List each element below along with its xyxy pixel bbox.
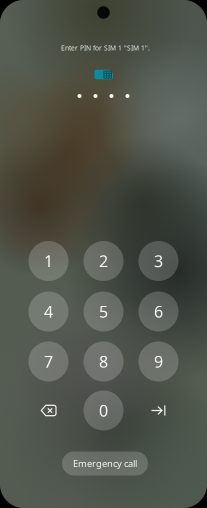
button[interactable]: 9 — [138, 341, 178, 381]
staticText: Enter PIN for SIM 1 "SIM 1". — [61, 44, 150, 52]
button[interactable]: 7 — [28, 341, 68, 381]
staticText: 6 — [154, 301, 163, 322]
button[interactable]: 2 — [83, 241, 123, 281]
staticText: 2 — [99, 250, 108, 272]
button[interactable]: Enter — [138, 390, 178, 430]
button[interactable]: Emergency call — [62, 451, 148, 475]
staticText: 9 — [154, 351, 163, 372]
staticText: 4 — [44, 301, 53, 322]
button[interactable]: 1 — [28, 241, 68, 281]
staticText: 0 — [99, 400, 108, 421]
button[interactable]: 4 — [28, 291, 68, 331]
button[interactable]: 5 — [83, 291, 123, 331]
staticText: 7 — [44, 351, 53, 372]
button[interactable]: Delete — [28, 390, 68, 430]
button[interactable]: 0 — [83, 390, 123, 430]
staticText: 8 — [99, 351, 108, 372]
button[interactable]: 3 — [138, 241, 178, 281]
button[interactable]: 8 — [83, 341, 123, 381]
staticText: 5 — [99, 301, 108, 322]
staticText: 1 — [44, 250, 53, 272]
staticText: 3 — [154, 250, 163, 272]
staticText: Emergency call — [73, 457, 137, 470]
button[interactable]: 6 — [138, 291, 178, 331]
